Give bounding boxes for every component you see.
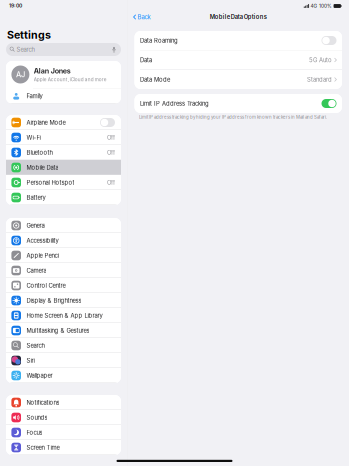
button[interactable]: AJ — [6, 61, 121, 88]
staticText: Standard — [307, 76, 332, 83]
staticText: Search — [17, 46, 35, 53]
staticText: Apple Account, iCloud and more — [34, 77, 107, 82]
staticText: Back — [138, 13, 151, 21]
staticText: Multitasking & Gestures — [26, 327, 89, 334]
staticText: Alan Jones — [34, 67, 71, 75]
button[interactable]: Sounds — [6, 410, 121, 425]
staticText: Data Roaming — [140, 37, 178, 44]
button[interactable]: Camera — [6, 263, 121, 278]
staticText: Personal Hotspot — [26, 179, 74, 186]
staticText: Sounds — [26, 414, 47, 421]
staticText: Wallpaper — [26, 372, 52, 379]
button[interactable]: Display & Brightness — [6, 293, 121, 308]
button[interactable]: Airplane Mode — [6, 115, 121, 130]
staticText: 19:00 — [9, 2, 22, 9]
staticText: Display & Brightness — [26, 297, 81, 304]
staticText: 100% — [319, 3, 332, 9]
staticText: Control Centre — [26, 282, 65, 289]
button[interactable]: Data Roaming — [134, 31, 342, 50]
staticText: Mobile Data Options — [210, 13, 267, 20]
staticText: Off — [107, 149, 115, 156]
button[interactable]: Wi-Fi — [6, 130, 121, 145]
button[interactable]: Data — [134, 50, 342, 69]
staticText: Battery — [26, 194, 45, 201]
staticText: Limit IP address tracking by hiding your… — [139, 114, 327, 120]
button[interactable]: Limit IP Address Tracking — [134, 94, 342, 113]
staticText: Wi-Fi — [26, 134, 40, 141]
staticText: Mobile Data — [26, 164, 58, 171]
staticText: Airplane Mode — [26, 119, 65, 126]
staticText: Screen Time — [26, 444, 59, 451]
staticText: Search — [26, 342, 44, 349]
button[interactable]: Battery — [6, 190, 121, 205]
button[interactable]: Search — [6, 43, 121, 56]
button[interactable]: Notifications — [6, 395, 121, 410]
button[interactable]: General — [6, 218, 121, 233]
staticText: Home Screen & App Library — [26, 312, 102, 319]
button[interactable]: Siri — [6, 353, 121, 368]
button[interactable]: Personal Hotspot — [6, 175, 121, 190]
button[interactable]: Wallpaper — [6, 368, 121, 383]
staticText: Camera — [26, 267, 46, 274]
button[interactable]: Mobile Data — [6, 160, 121, 175]
staticText: 4G — [310, 3, 317, 9]
button[interactable]: Apple Pencil — [6, 248, 121, 263]
button[interactable]: Focus — [6, 425, 121, 440]
staticText: Focus — [26, 429, 42, 436]
button[interactable]: Control Centre — [6, 278, 121, 293]
staticText: Bluetooth — [26, 149, 52, 156]
staticText: 5G Auto — [309, 56, 332, 64]
button[interactable]: Family — [6, 88, 121, 103]
staticText: AJ — [16, 70, 25, 79]
staticText: Notifications — [26, 399, 59, 406]
staticText: Settings — [7, 28, 51, 41]
staticText: Data Mode — [140, 76, 170, 83]
staticText: Off — [107, 179, 115, 186]
button[interactable]: Bluetooth — [6, 145, 121, 160]
button[interactable]: Accessibility — [6, 233, 121, 248]
staticText: General — [26, 222, 45, 229]
staticText: Limit IP Address Tracking — [140, 100, 209, 107]
button[interactable]: Multitasking & Gestures — [6, 323, 121, 338]
button[interactable]: Data Mode — [134, 70, 342, 89]
staticText: Siri — [26, 357, 34, 364]
button[interactable]: Home Screen & App Library — [6, 308, 121, 323]
button[interactable]: Search — [6, 338, 121, 353]
button[interactable]: Screen Time — [6, 440, 121, 455]
staticText: Apple Pencil — [26, 252, 59, 259]
staticText: Data — [140, 56, 152, 64]
staticText: Family — [26, 92, 42, 100]
button[interactable]: Back — [133, 13, 151, 21]
staticText: Accessibility — [26, 237, 58, 244]
staticText: Off — [107, 134, 115, 141]
